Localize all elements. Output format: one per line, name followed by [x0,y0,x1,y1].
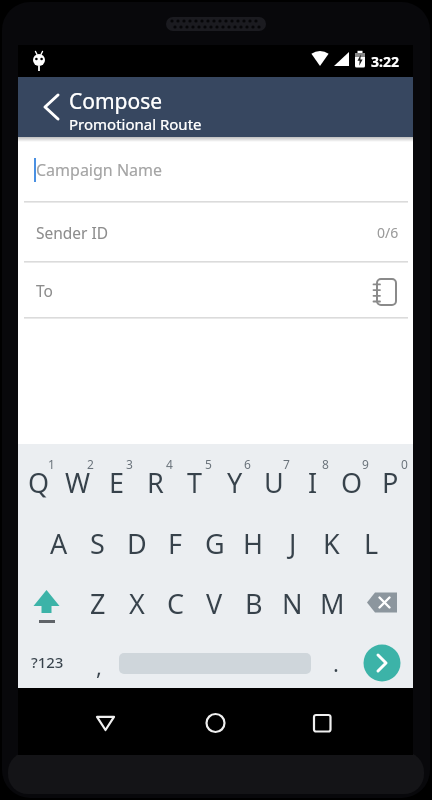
button[interactable] [195,703,235,743]
staticText: K [323,525,340,562]
button[interactable]: S [78,516,117,570]
staticText: Sender ID [36,222,109,243]
staticText: M [320,585,345,622]
button[interactable]: D [117,516,156,570]
button[interactable]: O [332,455,371,509]
button[interactable]: U [254,455,293,509]
staticText: T [187,464,203,501]
staticText: J [289,525,297,562]
staticText: I [308,464,318,501]
button[interactable]: K [312,516,351,570]
staticText: To [36,280,53,301]
staticText: 9 [362,456,369,472]
button[interactable]: E [97,455,136,509]
staticText: Y [227,464,243,501]
button[interactable] [85,703,125,743]
staticText: B [245,585,263,622]
button[interactable]: T [175,455,214,509]
staticText: 0 [401,456,408,472]
staticText: C [167,585,185,622]
button[interactable]: W [58,455,97,509]
staticText: L [364,525,379,562]
button[interactable]: V [195,576,234,630]
button[interactable]: N [273,576,312,630]
staticText: V [206,585,223,622]
staticText: . [333,648,339,678]
staticText: U [264,464,284,501]
staticText: F [168,525,183,562]
staticText: 6 [244,456,251,472]
button[interactable] [32,87,72,127]
staticText: Campaign Name [36,159,163,181]
staticText: 1 [48,456,55,472]
button[interactable] [18,262,413,316]
staticText: Compose [69,87,163,116]
staticText: N [282,585,303,622]
button[interactable]: F [156,516,195,570]
staticText: Z [90,585,106,622]
staticText: H [243,525,264,562]
staticText: 7 [283,456,290,472]
button[interactable] [364,645,401,682]
staticText: E [109,464,125,501]
button[interactable] [302,703,342,743]
staticText: O [341,464,363,501]
staticText: R [147,464,164,501]
staticText: 0/6 [377,223,399,242]
staticText: S [90,525,105,562]
staticText: 8 [322,456,329,472]
button[interactable]: I [293,455,332,509]
button[interactable]: Z [78,576,117,630]
button[interactable]: H [234,516,273,570]
button[interactable]: R [136,455,175,509]
staticText: A [50,525,68,562]
button[interactable] [119,647,311,680]
button[interactable] [26,582,67,623]
staticText: Promotional Route [69,114,202,134]
button[interactable]: M [313,576,352,630]
button[interactable]: G [195,516,234,570]
staticText: ?123 [31,652,64,672]
staticText: P [382,464,399,501]
button[interactable]: B [234,576,273,630]
button[interactable]: ?123 [25,642,69,682]
staticText: 3:22 [371,52,399,71]
button[interactable]: L [352,516,391,570]
staticText: 5 [205,456,212,472]
staticText: , [96,651,102,681]
button[interactable]: P [371,455,410,509]
staticText: G [205,525,225,562]
staticText: 3 [126,456,133,472]
staticText: Q [28,464,50,501]
button[interactable]: Q [19,455,58,509]
button[interactable]: C [156,576,195,630]
staticText: D [127,525,147,562]
button[interactable]: A [39,516,78,570]
button[interactable] [18,202,413,260]
button[interactable]: X [117,576,156,630]
staticText: X [129,585,145,622]
button[interactable]: . [321,643,351,683]
staticText: 4 [166,456,173,472]
staticText: 2 [87,456,94,472]
button[interactable]: Y [215,455,254,509]
staticText: W [65,464,91,501]
button[interactable] [18,142,413,200]
button[interactable] [363,582,404,623]
button[interactable]: J [273,516,312,570]
button[interactable]: , [84,646,114,686]
